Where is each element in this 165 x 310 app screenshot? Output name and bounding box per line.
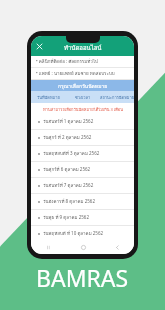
button[interactable]: วันศุกร์ที่ 6 ตุลาคม 2562 <box>31 162 134 177</box>
staticText: วันอังคารที่ 8 ตุลาคม 2562 <box>43 198 95 205</box>
staticText: วันศุกร์ที่ 6 ตุลาคม 2562 <box>43 166 91 173</box>
button[interactable]: วันจันทร์ที่ 1 ตุลาคม 2562 <box>31 114 134 129</box>
staticText: • แพทย์ : นายแพทย์ สมชาย ทดสอบระบบ <box>36 70 115 77</box>
staticText: สถานะการนัดหมาย <box>100 94 134 100</box>
button[interactable]: วันอังคารที่ 8 ตุลาคม 2562 <box>31 194 134 209</box>
staticText: BAMRAS <box>36 262 129 293</box>
button[interactable]: วันพฤหัสบดี ที่ 10 ตุลาคม 2562 <box>31 226 134 241</box>
button[interactable]: กรุณาเลือกวันนัดหมาย <box>31 80 134 91</box>
button[interactable]: Back <box>100 241 134 254</box>
button[interactable]: Close <box>34 41 44 51</box>
staticText: ช่วงเวลา <box>75 94 91 100</box>
staticText: วันที่นัดหมาย <box>37 94 60 100</box>
button[interactable]: • คลินิกที่ติดต่อ : ศัลยกรรมทั่วไป <box>31 56 134 67</box>
staticText: วันพฤหัสบดีที่ 3 ตุลาคม 2562 <box>43 150 100 157</box>
staticText: วันศุกร์ ที่ 2 ตุลาคม 2562 <box>43 134 92 141</box>
staticText: วันจันทร์ที่ 1 ตุลาคม 2562 <box>43 118 94 125</box>
button[interactable]: วันพุธ ที่ 9 ตุลาคม 2562 <box>31 210 134 225</box>
button[interactable]: วันศุกร์ ที่ 2 ตุลาคม 2562 <box>31 130 134 145</box>
button[interactable]: Recents <box>31 241 66 254</box>
staticText: วันจันทร์ที่ 7 ตุลาคม 2562 <box>43 182 94 189</box>
staticText: ทำนัดออนไลน์ <box>64 43 102 53</box>
staticText: วันพุธ ที่ 9 ตุลาคม 2562 <box>43 214 90 221</box>
staticText: กรุณาเลือกวันนัดหมาย <box>58 82 108 90</box>
staticText: ท่านสามารถเลือกวันนัดหมายได้ไม่เกิน 3 เด… <box>43 106 123 112</box>
button[interactable]: วันจันทร์ที่ 7 ตุลาคม 2562 <box>31 178 134 193</box>
button[interactable]: วันพฤหัสบดีที่ 3 ตุลาคม 2562 <box>31 146 134 161</box>
staticText: วันพฤหัสบดี ที่ 10 ตุลาคม 2562 <box>43 230 104 237</box>
staticText: • คลินิกที่ติดต่อ : ศัลยกรรมทั่วไป <box>36 58 98 65</box>
button[interactable]: • แพทย์ : นายแพทย์ สมชาย ทดสอบระบบ <box>31 68 134 79</box>
button[interactable]: Home <box>66 241 100 254</box>
